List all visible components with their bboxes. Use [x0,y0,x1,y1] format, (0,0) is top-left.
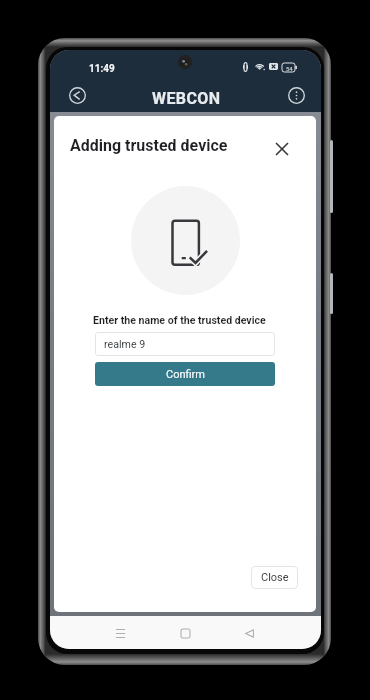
button[interactable]: Close [251,566,298,589]
button[interactable]: Close dialog [271,138,293,160]
staticText: 11:49 [89,63,115,75]
button[interactable]: Confirm [95,362,275,386]
staticText: WEBCON [152,89,221,108]
button[interactable]: Back [238,622,260,644]
staticText: Close [261,571,289,584]
button[interactable]: realme 9 [95,332,275,356]
button[interactable]: Back [65,83,90,108]
button[interactable]: Home [174,622,196,644]
button[interactable]: Recent apps [109,622,131,644]
staticText: 54 [286,65,293,72]
button[interactable]: More options [284,83,309,108]
staticText: Enter the name of the trusted device [93,314,266,326]
staticText: realme 9 [104,338,146,351]
staticText: Adding trusted device [70,136,228,155]
staticText: Confirm [166,368,205,381]
